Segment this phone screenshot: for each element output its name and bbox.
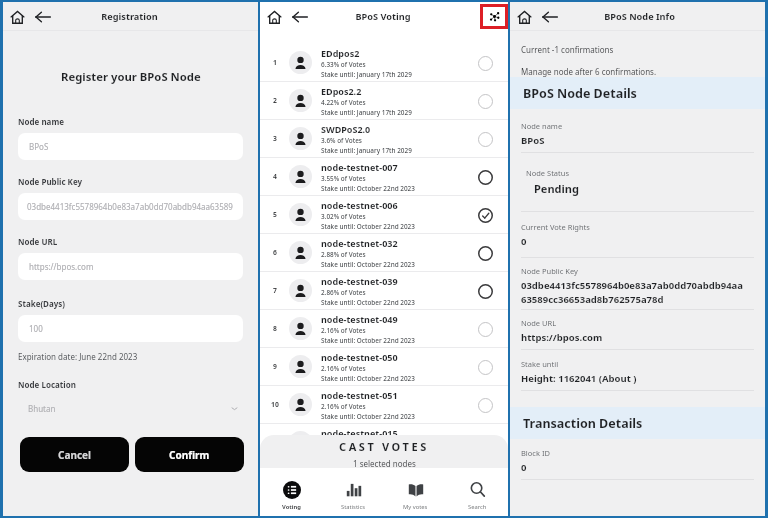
staticText: Node URL: [18, 236, 58, 247]
staticText: Stake(Days): [18, 298, 66, 309]
button[interactable]: Select node: [470, 238, 500, 268]
button[interactable]: Select node: [470, 390, 500, 420]
button[interactable]: Home: [264, 7, 284, 27]
button[interactable]: Confirm: [135, 437, 244, 472]
staticText: node-testnet-007: [321, 161, 398, 173]
staticText: 3.6% of Votes: [321, 136, 362, 145]
button[interactable]: Select node: [470, 428, 500, 458]
staticText: Node Location: [18, 379, 76, 390]
staticText: EDpos2.2: [321, 85, 362, 97]
staticText: Stake until: October 22nd 2023: [321, 260, 415, 269]
button[interactable]: Home: [514, 7, 534, 27]
staticText: Cancel: [58, 448, 92, 462]
button[interactable]: 3: [260, 120, 508, 157]
staticText: Register your BPoS Node: [61, 69, 201, 84]
staticText: Current Vote Rights: [521, 222, 590, 232]
button[interactable]: Statistics: [322, 468, 384, 516]
button[interactable]: Select node: [470, 162, 500, 192]
button[interactable]: 11: [260, 424, 508, 461]
staticText: 2.1% of Votes: [321, 440, 362, 449]
staticText: Node Public Key: [18, 176, 83, 187]
staticText: Stake until: October 22nd 2023: [321, 412, 415, 421]
staticText: Current -1 confirmations: [521, 44, 614, 55]
staticText: 4: [273, 172, 277, 181]
button[interactable]: Home: [7, 7, 27, 27]
button[interactable]: 2: [260, 82, 508, 119]
staticText: node-testnet-049: [321, 313, 398, 325]
staticText: CAST VOTES: [339, 439, 429, 454]
button[interactable]: 8: [260, 310, 508, 347]
button[interactable]: Bhutan: [18, 403, 243, 414]
staticText: Stake until: January 17th 2029: [321, 70, 412, 79]
staticText: 100: [29, 323, 43, 334]
staticText: 4.22% of Votes: [321, 98, 366, 107]
button[interactable]: 5: [260, 196, 508, 233]
staticText: 10: [271, 400, 279, 409]
staticText: EDdpos2: [321, 47, 360, 59]
staticText: Height: 1162041 (About ): [521, 372, 637, 385]
staticText: Node name: [18, 116, 64, 127]
staticText: 2.16% of Votes: [321, 326, 366, 335]
button[interactable]: Select node: [470, 86, 500, 116]
button[interactable]: Select node: [470, 314, 500, 344]
staticText: 2: [273, 96, 277, 105]
button[interactable]: CAST VOTES: [260, 435, 508, 468]
staticText: 2.16% of Votes: [321, 402, 366, 411]
button[interactable]: Network nodes: [480, 4, 508, 29]
button[interactable]: My votes: [384, 468, 446, 516]
staticText: 6: [273, 248, 277, 257]
button[interactable]: 03dbe4413fc5578964b0e83a7ab0dd70abdb94aa…: [18, 193, 243, 220]
staticText: 6.33% of Votes: [321, 60, 366, 69]
button[interactable]: https://bpos.com: [18, 253, 243, 280]
staticText: Confirm: [169, 448, 210, 462]
button[interactable]: BPoS: [18, 133, 243, 160]
staticText: Pending: [534, 181, 579, 196]
button[interactable]: 10: [260, 386, 508, 423]
button[interactable]: 100: [18, 315, 243, 342]
staticText: Voting: [282, 503, 301, 511]
staticText: https://bpos.com: [521, 331, 603, 344]
staticText: 03dbe4413fc5578964b0e83a7ab0dd70abdb94aa…: [521, 279, 743, 305]
staticText: Stake until: October 22nd 2023: [321, 336, 415, 345]
staticText: SWDPoS2.0: [321, 123, 371, 135]
staticText: My votes: [403, 503, 428, 511]
button[interactable]: Search: [446, 468, 508, 516]
button[interactable]: 7: [260, 272, 508, 309]
staticText: 0: [521, 461, 527, 474]
button[interactable]: Select node: [470, 124, 500, 154]
staticText: 9: [273, 362, 277, 371]
button[interactable]: Select node: [470, 276, 500, 306]
staticText: 8: [273, 324, 277, 333]
button[interactable]: Back: [33, 7, 53, 27]
staticText: https://bpos.com: [29, 261, 94, 272]
button[interactable]: 1: [260, 44, 508, 81]
button[interactable]: Select node: [470, 200, 500, 230]
staticText: Stake until: October 22nd 2023: [321, 222, 415, 231]
button[interactable]: 9: [260, 348, 508, 385]
button[interactable]: Back: [540, 7, 560, 27]
button[interactable]: Select node: [470, 352, 500, 382]
staticText: Registration: [101, 10, 158, 23]
staticText: Stake until: October 22nd 2023: [321, 450, 415, 459]
button[interactable]: Select node: [470, 48, 500, 78]
staticText: node-testnet-015: [321, 427, 398, 439]
staticText: node-testnet-006: [321, 199, 398, 211]
button[interactable]: Cancel: [20, 437, 129, 472]
button[interactable]: 6: [260, 234, 508, 271]
staticText: 0: [521, 235, 527, 248]
button[interactable]: Back: [290, 7, 310, 27]
staticText: Statistics: [341, 503, 366, 511]
staticText: BPoS Node Details: [523, 85, 637, 102]
button[interactable]: Voting: [260, 468, 322, 516]
staticText: Node Status: [526, 168, 569, 178]
staticText: node-testnet-050: [321, 351, 398, 363]
staticText: Node Public Key: [521, 266, 578, 276]
staticText: 2.88% of Votes: [321, 250, 366, 259]
staticText: Search: [468, 503, 487, 511]
staticText: Expiration date: June 22nd 2023: [18, 351, 138, 362]
button[interactable]: 4: [260, 158, 508, 195]
staticText: Stake until: January 17th 2029: [321, 146, 412, 155]
staticText: Bhutan: [28, 403, 56, 414]
staticText: 7: [273, 286, 277, 295]
staticText: BPoS: [521, 134, 545, 147]
